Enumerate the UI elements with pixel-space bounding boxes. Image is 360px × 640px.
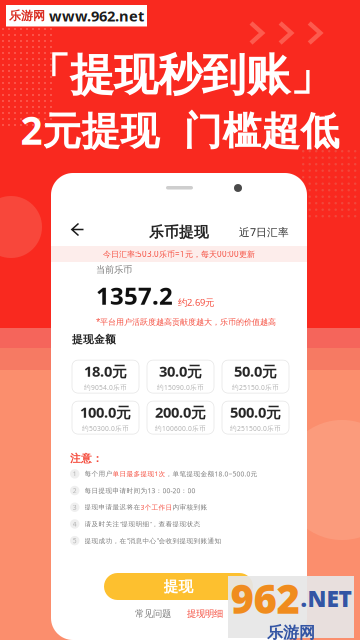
staticText: 1 [73, 469, 77, 478]
staticText: 约2.69元 [178, 296, 214, 308]
staticText: 提现成功，在“消息中心”会收到提现到账通知 [84, 536, 221, 545]
staticText: 内审核到账 [172, 503, 207, 511]
staticText: 4 [73, 519, 77, 528]
staticText: 请及时关注“提现明细”，查看提现状态 [84, 519, 200, 528]
staticText: 约100600.0乐币 [155, 424, 206, 433]
button[interactable]: 近7日汇率 [239, 225, 289, 239]
staticText: 18.0元 [84, 361, 127, 381]
button[interactable]: 提现明细 [187, 608, 223, 619]
staticText: 500.0元 [230, 402, 281, 422]
staticText: 近7日汇率 [239, 225, 289, 239]
staticText: 962 [230, 572, 299, 625]
staticText: 30.0元 [159, 361, 202, 381]
staticText: 注意： [70, 452, 103, 465]
button[interactable]: 18.0元 [72, 360, 139, 393]
button[interactable]: 100.0元 [72, 401, 139, 434]
staticText: 2 [73, 486, 77, 495]
staticText: 约25150.0乐币 [232, 383, 279, 392]
staticText: 1357.2 [96, 279, 173, 311]
staticText: *平台用户活跃度越高贡献度越大，乐币的价值越高 [96, 316, 276, 327]
staticText: 「提现秒到账」 [26, 48, 334, 102]
staticText: 3个工作日 [140, 503, 172, 512]
staticText: 当前乐币 [96, 264, 132, 275]
staticText: www.962.net [49, 6, 144, 25]
staticText: 约251500.0乐币 [230, 424, 281, 433]
staticText: 50.0元 [234, 361, 277, 381]
button[interactable]: 500.0元 [222, 401, 289, 434]
button[interactable]: 200.0元 [147, 401, 214, 434]
staticText: 单日最多提现1次 [112, 469, 165, 478]
staticText: 100.0元 [80, 402, 131, 422]
staticText: 每日提现申请时间为13：00-20：00 [84, 486, 195, 495]
staticText: 5 [73, 536, 77, 545]
staticText: 乐游网 [267, 623, 315, 640]
button[interactable]: 50.0元 [222, 360, 289, 393]
button[interactable]: 常见问题 [135, 608, 171, 619]
staticText: 乐币提现 [149, 223, 209, 241]
button[interactable]: 30.0元 [147, 360, 214, 393]
staticText: 2元提现 门槛超低 [20, 104, 339, 155]
staticText: .NET [300, 583, 351, 613]
staticText: 200.0元 [155, 402, 206, 422]
staticText: 今日汇率:503.0乐币=1元，每天00:00更新 [103, 249, 255, 259]
button[interactable]: 提现 [104, 573, 253, 600]
staticText: 乐游网 [9, 8, 45, 23]
staticText: 每个用户 [84, 470, 112, 478]
staticText: 提现金额 [72, 333, 116, 346]
staticText: 常见问题 [135, 608, 171, 619]
button[interactable]: 返回 [70, 222, 85, 237]
staticText: 提现 [163, 577, 193, 595]
staticText: 3 [73, 503, 77, 512]
staticText: ，单笔提现金额18.0~500.0元 [165, 469, 257, 478]
staticText: 约9054.0乐币 [84, 383, 127, 392]
staticText: 提现明细 [187, 608, 223, 619]
staticText: 约50300.0乐币 [82, 424, 129, 433]
staticText: 约15090.0乐币 [157, 383, 204, 392]
staticText: 提现申请最迟将在 [84, 503, 140, 511]
